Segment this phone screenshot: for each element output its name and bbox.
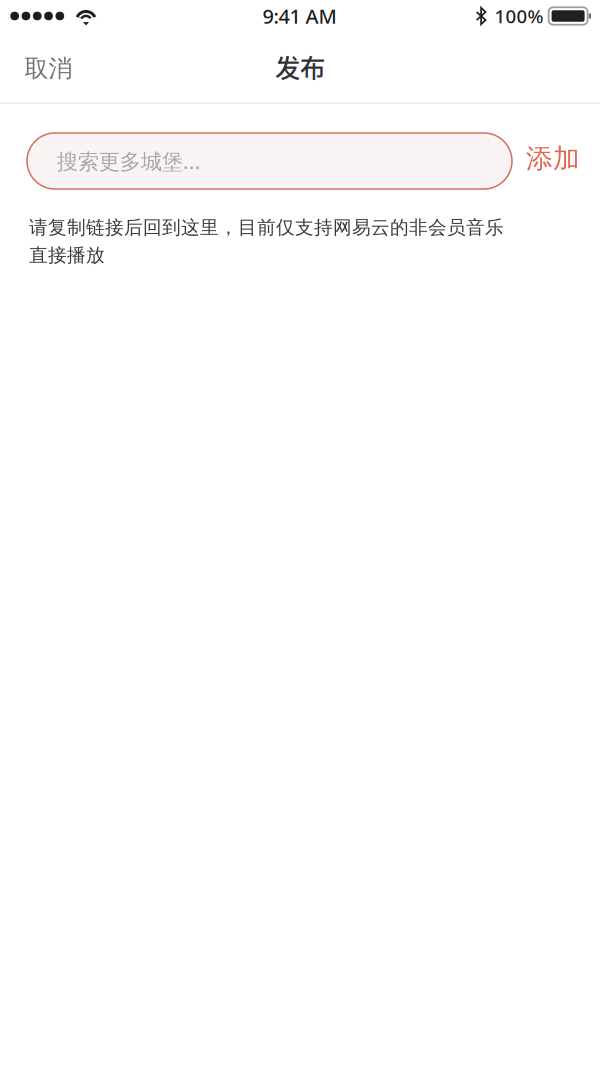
staticText: 发布	[275, 48, 325, 85]
staticText: 请复制链接后回到这里，目前仅支持网易云的非会员音乐直接播放	[29, 216, 504, 267]
button[interactable]: 取消	[0, 33, 130, 103]
staticText: 9:41 AM	[262, 3, 336, 29]
staticText: 添加	[526, 142, 580, 175]
button[interactable]: 添加	[512, 133, 594, 189]
staticText: 100%	[495, 4, 544, 28]
button[interactable]: 搜索更多城堡...	[27, 133, 512, 189]
staticText: 搜索更多城堡...	[57, 147, 201, 175]
staticText: 取消	[24, 54, 72, 83]
